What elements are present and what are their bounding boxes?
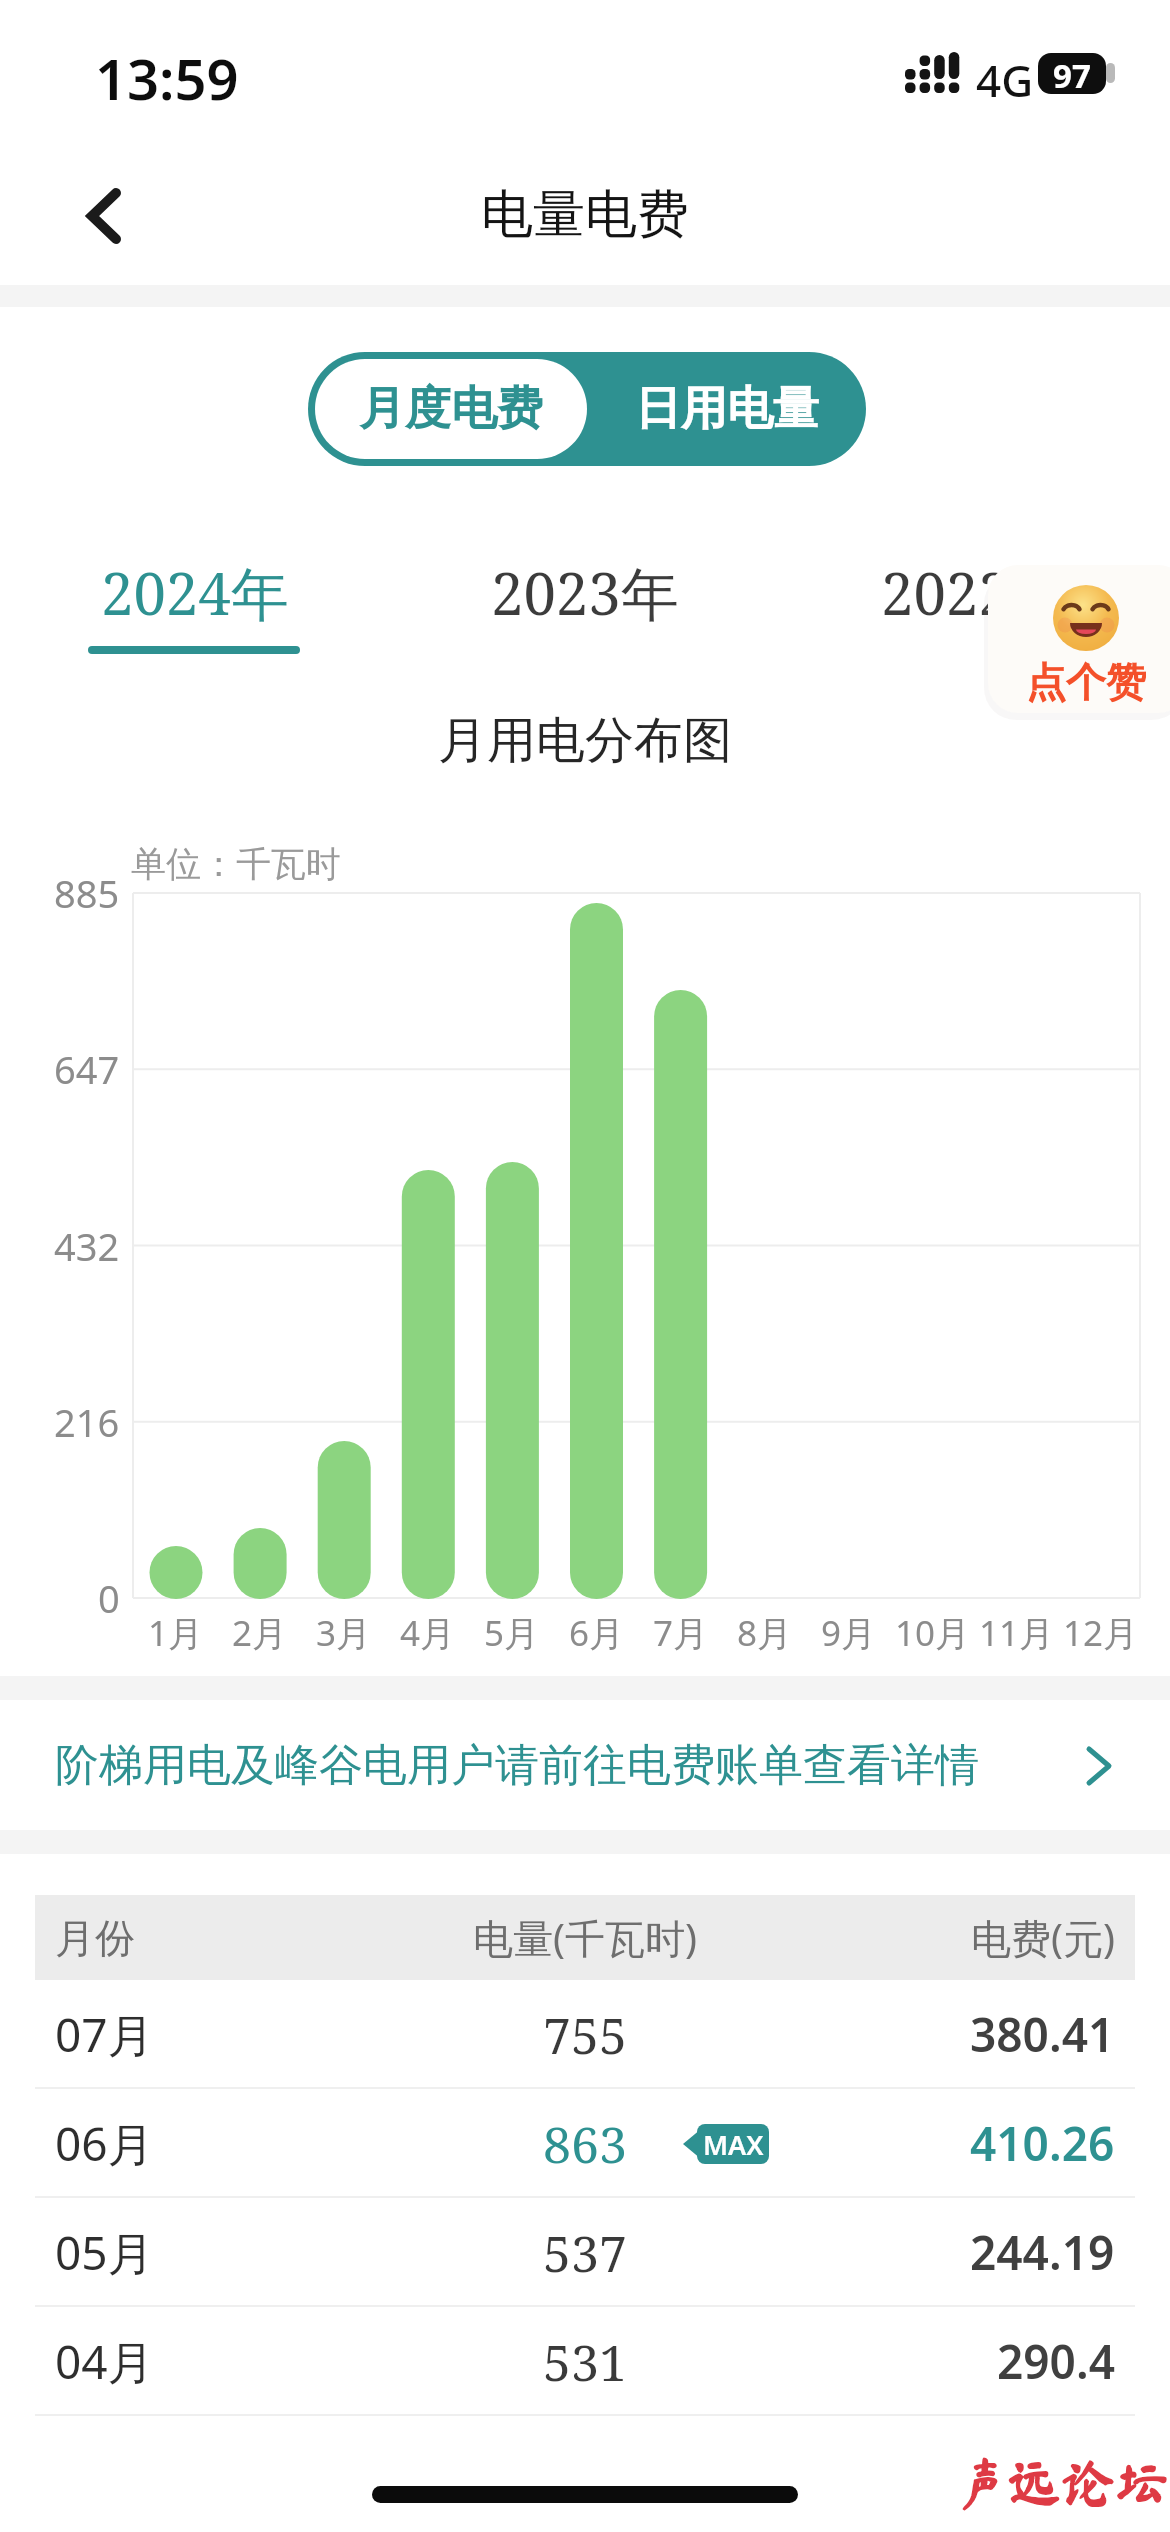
staticText: MAX — [703, 2126, 764, 2163]
staticText: 380.41 — [970, 2003, 1115, 2066]
staticText: 月份 — [55, 1913, 135, 1963]
staticText: 410.26 — [970, 2112, 1115, 2175]
staticText: 2022年 — [881, 553, 1069, 632]
button[interactable]: 04月 — [35, 2307, 1135, 2416]
staticText: 1月 — [148, 1609, 204, 1657]
button[interactable] — [60, 170, 150, 260]
button[interactable]: 点个赞 — [988, 565, 1170, 713]
button[interactable]: 2023年 — [390, 548, 780, 636]
button[interactable]: 阶梯用电及峰谷电用户请前往电费账单查看详情 — [0, 1700, 1170, 1830]
staticText: 月用电分布图 — [438, 710, 732, 772]
staticText: 声远论坛 — [953, 2455, 1169, 2509]
staticText: 13:59 — [95, 40, 239, 116]
staticText: 阶梯用电及峰谷电用户请前往电费账单查看详情 — [55, 1738, 979, 1793]
button[interactable]: 2024年 — [0, 548, 390, 636]
staticText: 9月 — [821, 1609, 877, 1657]
staticText: 04月 — [55, 2330, 154, 2393]
button[interactable]: 月度电费 — [315, 359, 587, 459]
staticText: 3月 — [316, 1609, 372, 1657]
staticText: 12月 — [1063, 1609, 1139, 1657]
staticText: 8月 — [737, 1609, 793, 1657]
staticText: 432 — [54, 1220, 120, 1272]
staticText: 2024年 — [101, 553, 289, 632]
staticText: 单位：千瓦时 — [131, 842, 341, 886]
staticText: 电量电费 — [481, 182, 689, 248]
staticText: 863 — [543, 2110, 627, 2178]
staticText: 日用电量 — [635, 380, 819, 438]
button[interactable]: 06月 — [35, 2089, 1135, 2198]
staticText: 电量(千瓦时) — [473, 1910, 697, 1965]
staticText: 5月 — [484, 1609, 540, 1657]
staticText: 10月 — [895, 1609, 971, 1657]
staticText: 月度电费 — [359, 380, 543, 438]
staticText: 电费(元) — [971, 1910, 1115, 1965]
staticText: 05月 — [55, 2221, 154, 2284]
staticText: 6月 — [569, 1609, 625, 1657]
staticText: 97 — [1053, 53, 1091, 94]
staticText: 07月 — [55, 2003, 154, 2066]
staticText: 244.19 — [970, 2221, 1115, 2284]
button[interactable]: 05月 — [35, 2198, 1135, 2307]
staticText: 点个赞 — [1026, 657, 1146, 705]
staticText: 06月 — [55, 2112, 154, 2175]
staticText: 0 — [98, 1572, 120, 1624]
staticText: 2月 — [232, 1609, 288, 1657]
staticText: 2023年 — [491, 553, 679, 632]
staticText: 7月 — [653, 1609, 709, 1657]
staticText: 4月 — [400, 1609, 456, 1657]
staticText: 531 — [543, 2328, 627, 2396]
staticText: 647 — [54, 1043, 120, 1095]
staticText: 537 — [543, 2219, 627, 2287]
button[interactable]: 07月 — [35, 1980, 1135, 2089]
button[interactable]: 2022年 — [780, 548, 1170, 636]
staticText: 290.4 — [997, 2330, 1115, 2393]
staticText: 4G — [976, 50, 1034, 110]
staticText: 216 — [54, 1396, 120, 1448]
button[interactable]: 日用电量 — [588, 352, 866, 466]
staticText: 755 — [543, 2001, 627, 2069]
staticText: 11月 — [979, 1609, 1055, 1657]
staticText: 885 — [54, 867, 120, 919]
